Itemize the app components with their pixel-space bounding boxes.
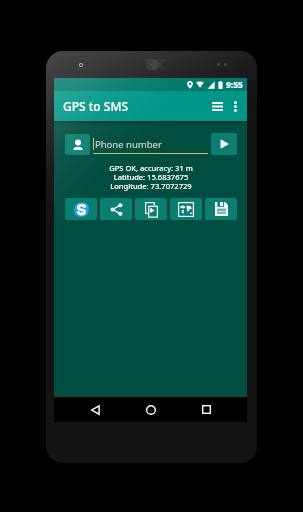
button[interactable]: Save xyxy=(205,198,237,220)
staticText: GPS OK, accuracy: 31 m Latitude: 15.6837… xyxy=(109,163,193,191)
button[interactable]: Send xyxy=(211,133,237,155)
button[interactable]: Recents xyxy=(191,397,221,422)
button[interactable]: History xyxy=(207,91,227,121)
staticText: 9:55 xyxy=(226,79,243,91)
staticText: Phone number xyxy=(95,138,162,151)
staticText: GPS to SMS xyxy=(63,98,129,114)
button[interactable]: Home xyxy=(136,397,166,422)
button[interactable]: Copy xyxy=(135,198,167,220)
button[interactable]: More options xyxy=(227,91,244,121)
button[interactable]: Back xyxy=(80,397,110,422)
button[interactable]: Pick contact xyxy=(65,134,90,155)
button[interactable]: Open map xyxy=(170,198,202,220)
button[interactable]: Share xyxy=(100,198,132,220)
button[interactable]: Send via Skype xyxy=(65,198,97,220)
